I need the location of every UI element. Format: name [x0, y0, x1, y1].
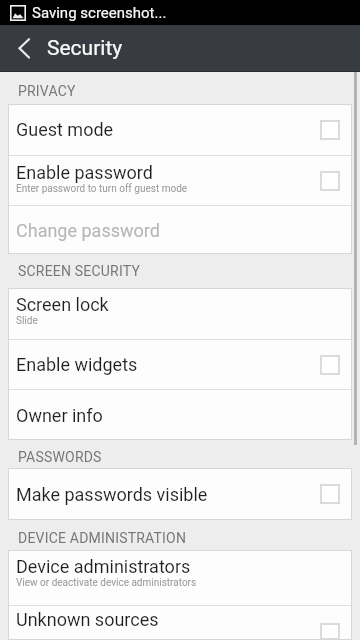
staticText: View or deactivate device administrators: [16, 577, 197, 589]
staticText: Unknown sources: [16, 609, 159, 630]
staticText: Security: [47, 36, 123, 61]
button[interactable]: Device administrators: [8, 550, 352, 605]
button[interactable]: Make passwords visible: [8, 468, 352, 520]
staticText: Make passwords visible: [16, 484, 208, 505]
button[interactable]: Enable password: [8, 156, 352, 205]
staticText: Enable password: [16, 162, 153, 183]
staticText: Change password: [16, 220, 160, 241]
button[interactable]: Change password: [8, 206, 352, 254]
button[interactable]: Screen lock: [8, 288, 352, 339]
staticText: Device administrators: [16, 556, 191, 577]
staticText: Guest mode: [16, 119, 114, 140]
button[interactable]: Owner info: [8, 390, 352, 440]
staticText: Screen lock: [16, 294, 109, 315]
staticText: PASSWORDS: [18, 449, 102, 465]
staticText: Slide: [16, 315, 38, 327]
button[interactable]: Security: [0, 25, 360, 72]
staticText: Owner info: [16, 405, 103, 426]
button[interactable]: Enable widgets: [8, 340, 352, 389]
button[interactable]: Guest mode: [8, 104, 352, 155]
staticText: SCREEN SECURITY: [18, 263, 140, 279]
staticText: Enter password to turn off guest mode: [16, 183, 188, 195]
staticText: PRIVACY: [18, 83, 76, 99]
button[interactable]: Unknown sources: [8, 606, 352, 640]
staticText: DEVICE ADMINISTRATION: [18, 530, 187, 546]
staticText: Saving screenshot...: [32, 4, 167, 22]
staticText: Enable widgets: [16, 354, 138, 375]
